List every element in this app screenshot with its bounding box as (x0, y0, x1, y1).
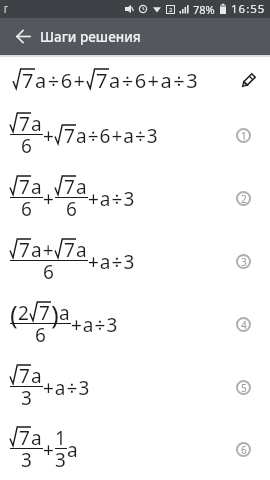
staticText: a (76, 237, 88, 263)
staticText: +a÷3 (71, 312, 119, 338)
staticText: + (43, 437, 55, 463)
staticText: 6 (21, 196, 33, 222)
staticText: +a÷3 (43, 375, 91, 401)
staticText: 78% (193, 2, 215, 17)
staticText: 2 (169, 6, 173, 14)
staticText: 7 (19, 111, 31, 137)
staticText: +a÷3 (88, 186, 136, 212)
staticText: 6 (43, 259, 55, 285)
staticText: 7 (64, 237, 76, 263)
staticText: 2 (241, 192, 247, 206)
staticText: a÷6+ (35, 67, 87, 94)
staticText: Γ (4, 4, 8, 15)
staticText: a (67, 437, 79, 463)
staticText: a÷6+a÷3 (109, 67, 200, 94)
button[interactable]: ( (0, 293, 270, 356)
staticText: 7 (22, 67, 35, 94)
button[interactable]: 7 (0, 167, 270, 230)
staticText: 7 (39, 300, 51, 326)
staticText: a (31, 363, 43, 389)
staticText: a (59, 300, 71, 326)
staticText: 2 (18, 300, 30, 326)
staticText: 6 (21, 133, 33, 159)
staticText: 16:55 (231, 1, 266, 17)
staticText: Шаги решения (40, 28, 141, 46)
button[interactable]: 7 (0, 230, 270, 293)
button[interactable]: 7 (0, 419, 270, 480)
staticText: ) (51, 296, 59, 331)
button[interactable] (0, 18, 40, 55)
staticText: 3 (21, 385, 33, 411)
staticText: 1 (241, 129, 247, 143)
staticText: 3 (241, 255, 247, 269)
button[interactable]: 7 (0, 356, 270, 419)
staticText: 7 (19, 425, 31, 451)
staticText: 7 (19, 174, 31, 200)
staticText: 4 (241, 318, 247, 332)
staticText: 1 (55, 425, 67, 451)
staticText: a (31, 174, 43, 200)
staticText: a (31, 425, 43, 451)
staticText: 5 (241, 381, 247, 395)
staticText: 7 (64, 174, 76, 200)
staticText: a÷6+a÷3 (76, 123, 159, 149)
staticText: 6 (66, 196, 78, 222)
button[interactable]: 7 (0, 104, 270, 167)
staticText: 6 (35, 322, 47, 348)
staticText: 7 (64, 123, 76, 149)
staticText: ( (10, 296, 18, 331)
staticText: 7 (96, 67, 109, 94)
staticText: a (31, 111, 43, 137)
staticText: a (76, 174, 88, 200)
staticText: 3 (55, 447, 67, 473)
staticText: +a÷3 (88, 249, 136, 275)
staticText: + (43, 186, 55, 212)
staticText: 7 (19, 237, 31, 263)
staticText: 6 (241, 443, 247, 457)
staticText: + (43, 123, 55, 149)
staticText: 7 (19, 363, 31, 389)
staticText: 3 (21, 447, 33, 473)
staticText: a+ (31, 237, 55, 263)
button[interactable] (239, 72, 257, 90)
